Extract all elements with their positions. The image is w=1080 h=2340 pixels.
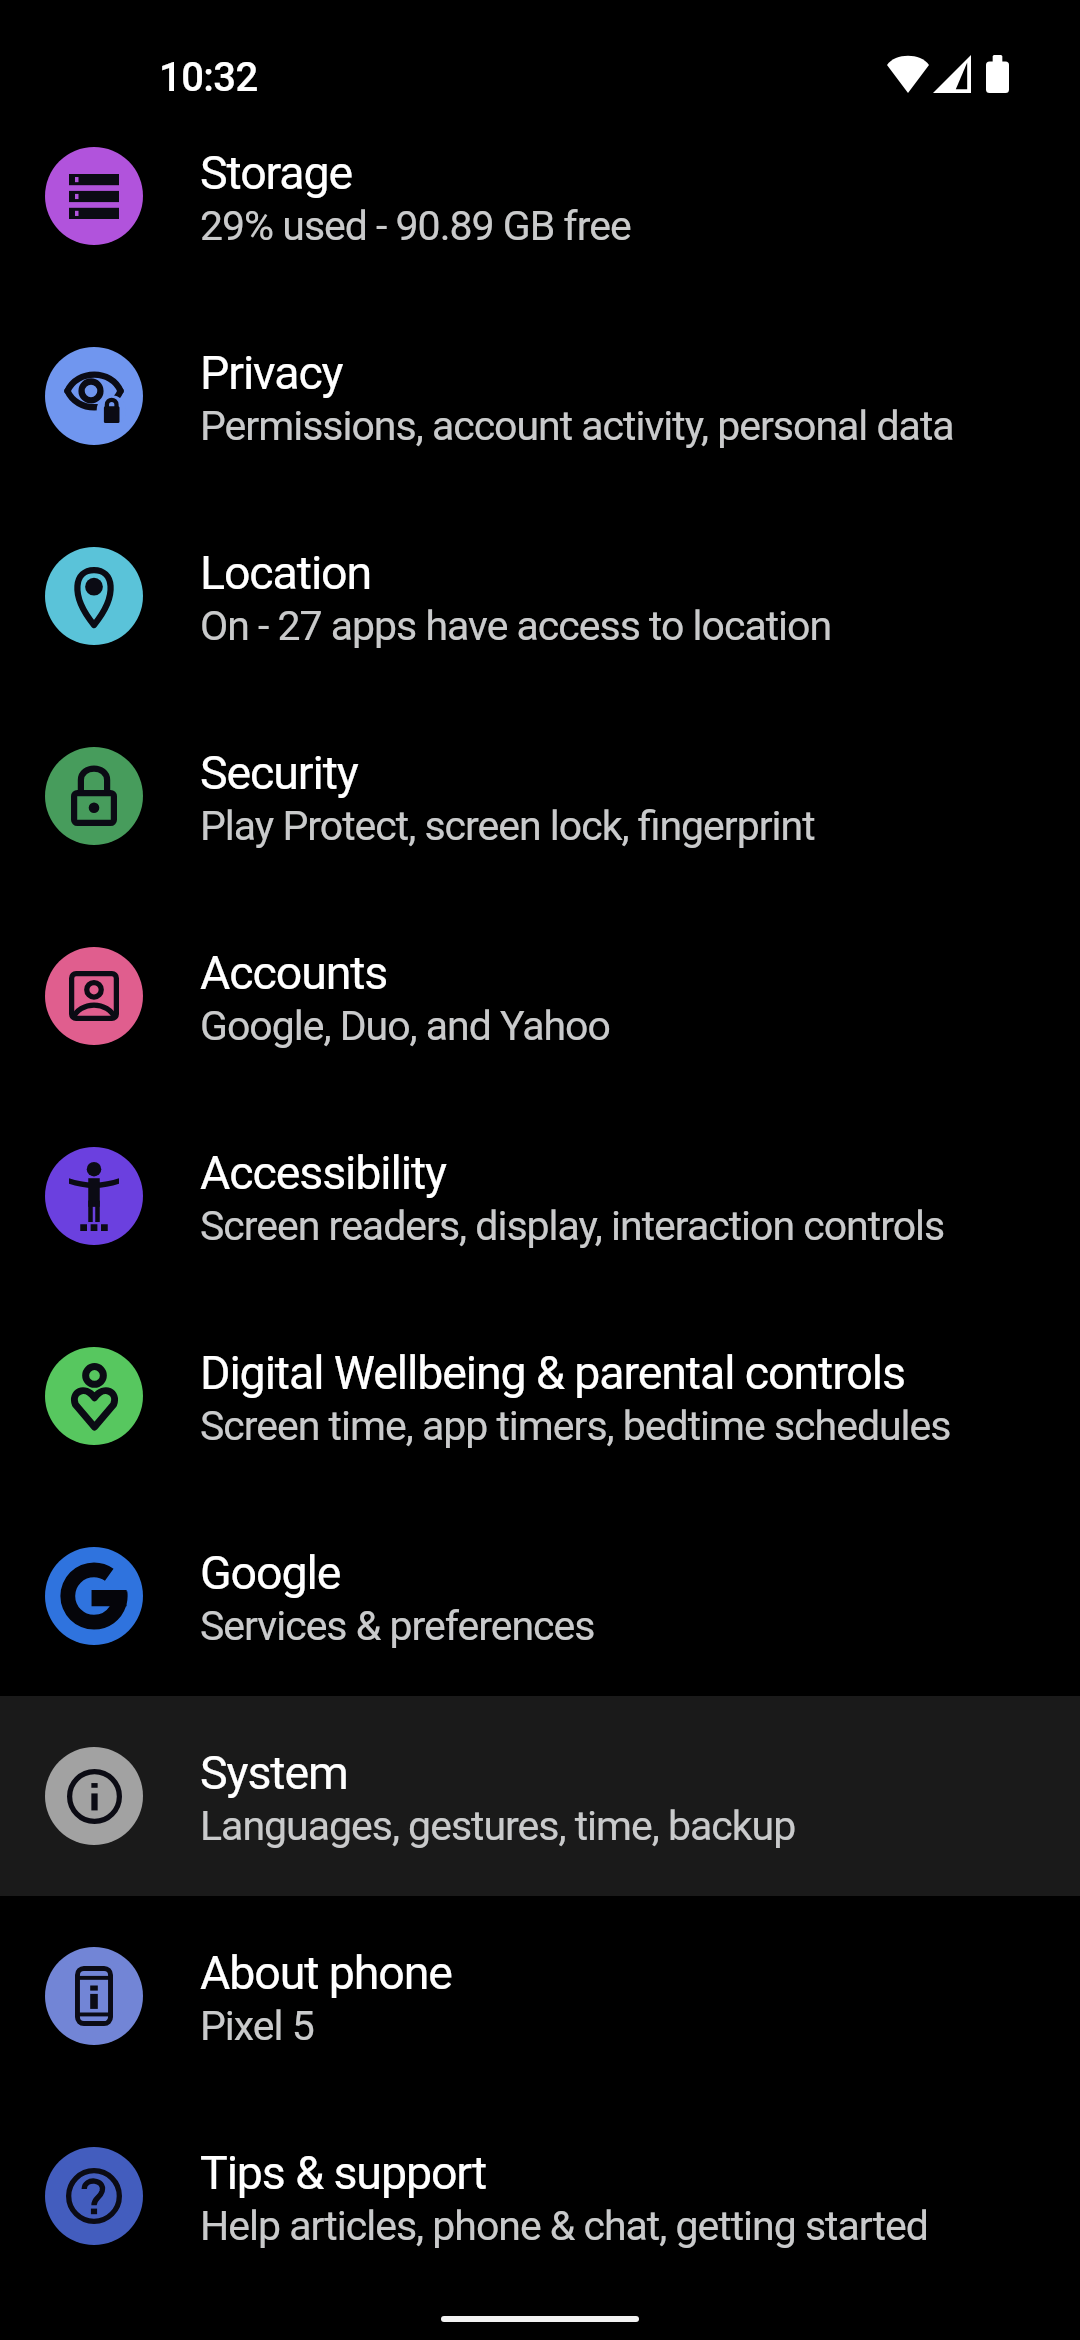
staticText: Digital Wellbeing & parental controls bbox=[200, 1346, 905, 1400]
button[interactable]: Accessibility bbox=[0, 1096, 1080, 1296]
staticText: Security bbox=[200, 746, 358, 800]
staticText: Accounts bbox=[200, 946, 388, 1000]
staticText: System bbox=[200, 1746, 348, 1800]
staticText: Services & preferences bbox=[200, 1602, 595, 1650]
staticText: On - 27 apps have access to location bbox=[200, 602, 832, 650]
button[interactable]: Tips & support bbox=[0, 2096, 1080, 2296]
staticText: Tips & support bbox=[200, 2146, 487, 2200]
button[interactable]: System bbox=[0, 1696, 1080, 1896]
staticText: Play Protect, screen lock, fingerprint bbox=[200, 802, 815, 850]
staticText: Languages, gestures, time, backup bbox=[200, 1802, 796, 1850]
staticText: About phone bbox=[200, 1946, 452, 2000]
button[interactable]: Security bbox=[0, 696, 1080, 896]
staticText: Google bbox=[200, 1546, 341, 1600]
button[interactable]: About phone bbox=[0, 1896, 1080, 2096]
staticText: Location bbox=[200, 546, 372, 600]
button[interactable]: Accounts bbox=[0, 896, 1080, 1096]
staticText: Google, Duo, and Yahoo bbox=[200, 1002, 610, 1050]
staticText: Screen readers, display, interaction con… bbox=[200, 1202, 945, 1250]
button[interactable]: Privacy bbox=[0, 296, 1080, 496]
button[interactable]: Location bbox=[0, 496, 1080, 696]
staticText: 29% used - 90.89 GB free bbox=[200, 202, 631, 250]
button[interactable]: Digital Wellbeing & parental controls bbox=[0, 1296, 1080, 1496]
staticText: 10:32 bbox=[159, 54, 258, 101]
staticText: Screen time, app timers, bedtime schedul… bbox=[200, 1402, 951, 1450]
staticText: Pixel 5 bbox=[200, 2002, 314, 2050]
staticText: Accessibility bbox=[200, 1146, 446, 1200]
staticText: Permissions, account activity, personal … bbox=[200, 402, 954, 450]
button[interactable]: Google bbox=[0, 1496, 1080, 1696]
staticText: Privacy bbox=[200, 346, 343, 400]
staticText: Storage bbox=[200, 146, 353, 200]
staticText: Help articles, phone & chat, getting sta… bbox=[200, 2202, 928, 2250]
button[interactable]: Storage bbox=[0, 96, 1080, 296]
